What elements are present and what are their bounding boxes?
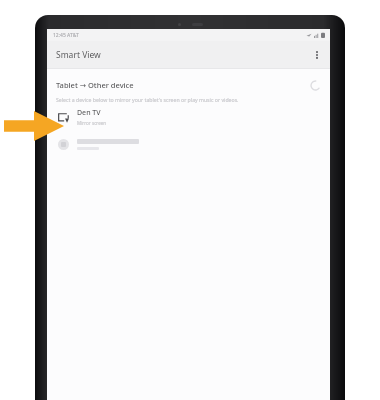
- staticText: Tablet → Other device: [56, 80, 134, 90]
- button[interactable]: Scanning for devices: [308, 78, 322, 92]
- staticText: Den TV: [77, 108, 101, 118]
- button[interactable]: Den TV: [47, 103, 330, 131]
- staticText: Smart View: [56, 49, 101, 61]
- staticText: Mirror screen: [77, 120, 107, 126]
- button[interactable]: More options: [307, 45, 327, 65]
- staticText: 12:45 AT&T: [53, 32, 79, 39]
- other: Pointer to Den TV: [4, 110, 64, 142]
- button[interactable]: Other device, unavailable: [47, 131, 330, 157]
- staticText: Select a device below to mirror your tab…: [56, 96, 239, 103]
